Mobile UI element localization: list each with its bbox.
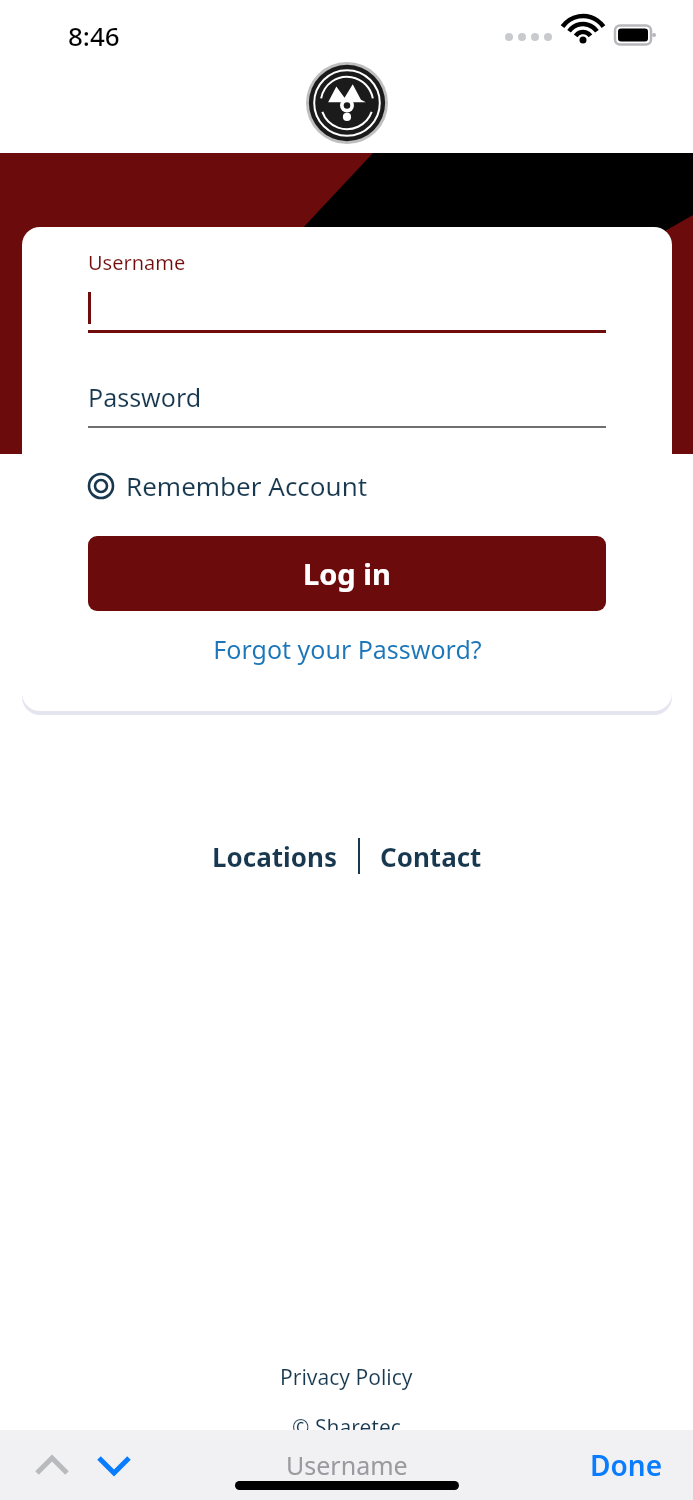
button[interactable]: Remember Account bbox=[88, 468, 368, 503]
button[interactable]: Locations bbox=[206, 839, 344, 874]
button[interactable]: Travis County Credit Union logo bbox=[306, 62, 388, 144]
button[interactable]: Previous field bbox=[24, 1437, 80, 1493]
staticText: Username bbox=[286, 1448, 408, 1482]
staticText: Contact bbox=[380, 839, 482, 874]
staticText: Forgot your Password? bbox=[213, 632, 482, 666]
button[interactable]: Privacy Policy bbox=[280, 1363, 413, 1392]
button[interactable]: Password bbox=[88, 380, 202, 414]
button[interactable]: Log in bbox=[88, 536, 606, 611]
button[interactable]: Done bbox=[590, 1446, 663, 1484]
staticText: Privacy Policy bbox=[280, 1363, 413, 1392]
staticText: Username bbox=[88, 249, 186, 276]
staticText: Remember Account bbox=[126, 468, 368, 503]
button[interactable]: Next field bbox=[86, 1437, 142, 1493]
staticText: 8:46 bbox=[68, 18, 120, 53]
staticText: Log in bbox=[303, 554, 391, 593]
button[interactable]: Forgot your Password? bbox=[88, 632, 606, 666]
button[interactable]: Contact bbox=[374, 839, 488, 874]
staticText: Done bbox=[590, 1446, 663, 1484]
staticText: © Sharetec bbox=[292, 1413, 401, 1442]
button[interactable] bbox=[88, 286, 606, 330]
staticText: Locations bbox=[212, 839, 338, 874]
